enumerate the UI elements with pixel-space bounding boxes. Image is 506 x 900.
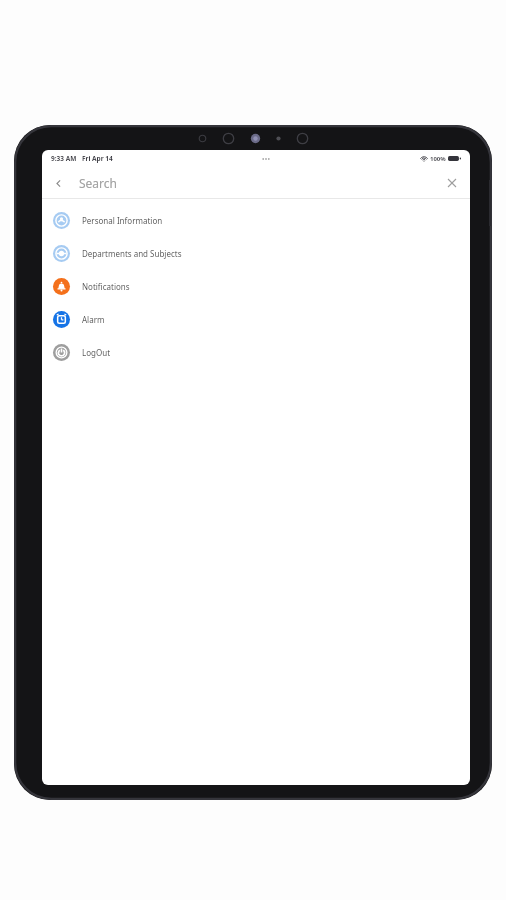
staticText: 100% xyxy=(430,155,446,163)
staticText: 9:33 AM xyxy=(51,154,77,163)
staticText: Alarm xyxy=(82,314,105,325)
staticText: Search xyxy=(79,175,117,191)
button[interactable]: LogOut xyxy=(42,336,470,369)
staticText: Notifications xyxy=(82,281,130,292)
button[interactable]: Alarm xyxy=(42,303,470,336)
button[interactable]: Close xyxy=(440,171,464,195)
button[interactable]: Notifications xyxy=(42,270,470,303)
button[interactable]: Personal Information xyxy=(42,204,470,237)
button[interactable]: Search xyxy=(79,175,117,191)
button[interactable]: Departments and Subjects xyxy=(42,237,470,270)
button[interactable]: Back xyxy=(45,170,71,196)
staticText: Departments and Subjects xyxy=(82,248,182,259)
staticText: Personal Information xyxy=(82,215,163,226)
staticText: LogOut xyxy=(82,347,111,358)
staticText: Fri Apr 14 xyxy=(82,154,113,163)
